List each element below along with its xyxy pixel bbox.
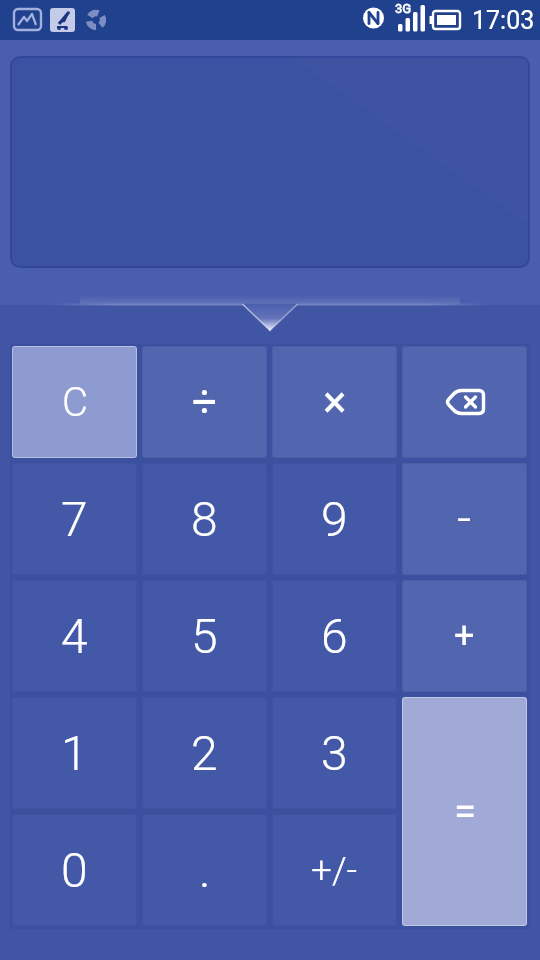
button[interactable]: 5 — [142, 580, 267, 692]
button[interactable]: = — [402, 697, 527, 926]
button[interactable]: 0 — [12, 814, 137, 926]
staticText: 0 — [61, 842, 88, 898]
staticText: 6 — [321, 608, 348, 664]
staticText: 9 — [321, 491, 348, 547]
button[interactable]: +/- — [272, 814, 397, 926]
button[interactable]: × — [272, 346, 397, 458]
staticText: ÷ — [192, 376, 218, 428]
staticText: 2 — [191, 725, 218, 781]
staticText: 5 — [191, 608, 218, 664]
button[interactable]: 3 — [272, 697, 397, 809]
staticText: C — [62, 379, 88, 426]
button[interactable]: 4 — [12, 580, 137, 692]
staticText: - — [457, 490, 472, 549]
staticText: 17:03 — [472, 6, 535, 35]
button[interactable]: - — [402, 463, 527, 575]
button[interactable]: 8 — [142, 463, 267, 575]
button[interactable]: + — [402, 580, 527, 692]
button[interactable] — [402, 346, 527, 458]
button[interactable]: 9 — [272, 463, 397, 575]
staticText: × — [323, 376, 347, 428]
staticText: 8 — [191, 491, 218, 547]
staticText: 1 — [61, 725, 88, 781]
staticText: = — [454, 788, 476, 835]
button[interactable]: C — [12, 346, 137, 458]
staticText: + — [454, 615, 475, 657]
staticText: 3G — [395, 1, 412, 16]
staticText: 3 — [321, 725, 348, 781]
staticText: . — [199, 842, 211, 898]
button[interactable]: 7 — [12, 463, 137, 575]
staticText: 4 — [61, 608, 88, 664]
button[interactable]: 1 — [12, 697, 137, 809]
button[interactable]: 2 — [142, 697, 267, 809]
staticText: +/- — [311, 849, 358, 892]
staticText: 7 — [61, 491, 88, 547]
button[interactable]: 6 — [272, 580, 397, 692]
button[interactable]: ÷ — [142, 346, 267, 458]
button[interactable]: . — [142, 814, 267, 926]
